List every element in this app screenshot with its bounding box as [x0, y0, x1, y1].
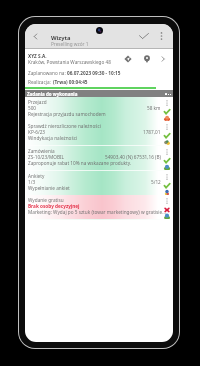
staticText: KP-6/23	[28, 129, 46, 135]
staticText: Zaplanowano na:	[28, 70, 67, 76]
staticText: Windykacja należności	[28, 135, 78, 141]
button[interactable]: Accept	[135, 29, 152, 43]
button[interactable]: Task actions	[163, 197, 171, 219]
button[interactable]: More options	[155, 28, 168, 44]
staticText: Wizyta	[51, 34, 71, 42]
staticText: 58 km	[147, 105, 161, 111]
button[interactable]: Task actions	[163, 99, 171, 121]
button[interactable]: Open client	[156, 52, 170, 65]
staticText: Przejazd	[28, 99, 47, 105]
staticText: Wypełnianie ankiet	[28, 185, 70, 191]
staticText: Ankiety	[28, 173, 45, 179]
staticText: 54903,40 (N) 67531,16 (B)	[105, 154, 161, 160]
button[interactable]: Przejazd	[25, 97, 173, 122]
staticText: Zadania do wykonania	[27, 91, 78, 97]
button[interactable]: Navigate	[121, 52, 135, 65]
staticText: Sprawdź nierozliczone należności	[28, 123, 101, 129]
staticText: Preselling wzór 1	[51, 41, 89, 47]
staticText: XYZ S.A.	[28, 53, 47, 59]
button[interactable]: Location	[140, 52, 154, 65]
button[interactable]: Sprawdź nierozliczone należności	[25, 121, 173, 146]
staticText: Realizacja:	[28, 79, 53, 85]
button[interactable]: Zamówienia	[25, 146, 173, 171]
staticText: Rejestracja przyjazdu samochodem	[28, 111, 106, 117]
staticText: (Trwa) 00:04:45	[53, 79, 88, 85]
button[interactable]: Zadania do wykonania	[25, 90, 173, 97]
staticText: 500	[28, 105, 37, 111]
staticText: Kraków, Powstania Warszawskiego 48	[28, 59, 111, 65]
button[interactable]: Back	[28, 29, 42, 43]
button[interactable]: Task actions	[163, 123, 171, 145]
button[interactable]: Wydanie gratisu	[25, 195, 173, 220]
staticText: 06.07.2023 09:30 - 10:15	[67, 70, 121, 76]
staticText: Wydanie gratisu	[28, 197, 64, 203]
staticText: Zaproponuje rabat 10% na wskazane produk…	[28, 160, 132, 166]
staticText: 1/3	[28, 179, 36, 185]
staticText: 1787,01	[143, 129, 161, 135]
button[interactable]: Task actions	[163, 173, 171, 195]
button[interactable]: Ankiety	[25, 171, 173, 196]
staticText: ZS-10/23/MOBIL	[28, 154, 64, 160]
button[interactable]: Task actions	[163, 148, 171, 170]
staticText: Brak osoby decyzyjnej	[28, 203, 80, 209]
staticText: 5/12	[151, 179, 161, 185]
staticText: Zamówienia	[28, 148, 55, 154]
staticText: Marketing: Wydaj po 5 sztuk (towar marke…	[28, 209, 166, 215]
